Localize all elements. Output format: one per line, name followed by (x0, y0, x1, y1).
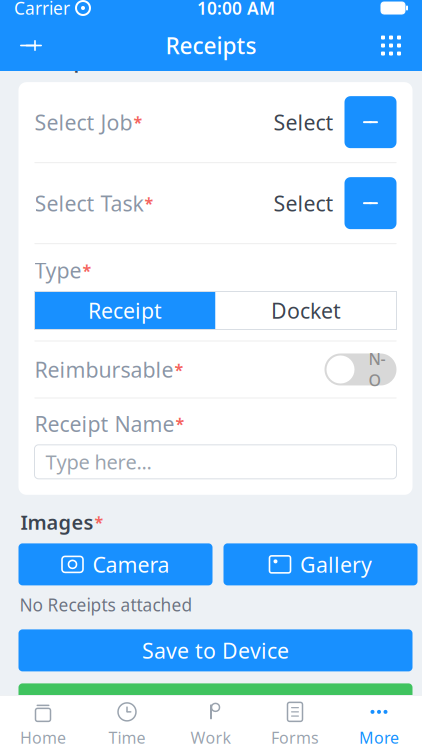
button[interactable] (18, 683, 412, 725)
staticText: Receipt (88, 296, 162, 325)
staticText: NO (368, 348, 385, 391)
staticText: Select (273, 189, 333, 217)
staticText: Carrier (14, 0, 70, 19)
staticText: More (359, 727, 399, 748)
staticText: Forms (271, 727, 319, 748)
staticText: * (82, 260, 91, 281)
staticText: * (144, 192, 153, 214)
button[interactable]: Type here... (34, 445, 396, 479)
button[interactable]: Forms (253, 695, 337, 750)
button[interactable]: Back (6, 20, 56, 70)
staticText: Select Job (34, 108, 132, 136)
staticText: Work (190, 727, 231, 748)
staticText: No Receipts attached (19, 593, 192, 616)
button[interactable]: Docket (215, 291, 396, 329)
staticText: Receipt Name (34, 409, 174, 438)
staticText: Time (108, 727, 145, 748)
staticText: Images (20, 509, 93, 535)
button[interactable]: More (337, 695, 421, 750)
staticText: Receipt Info (20, 47, 138, 73)
staticText: Camera (92, 550, 169, 578)
staticText: Receipts (165, 30, 256, 60)
button[interactable]: Save to Device (18, 629, 412, 671)
button[interactable]: Select Job (344, 96, 396, 148)
staticText: Select (273, 108, 333, 136)
staticText: Type here... (45, 448, 151, 475)
button[interactable]: Select Task (344, 177, 396, 229)
staticText: Gallery (300, 550, 372, 578)
staticText: * (175, 413, 184, 434)
button[interactable]: Reimbursable toggle (324, 353, 396, 385)
staticText: * (174, 359, 183, 380)
staticText: 10:00 AM (197, 0, 275, 19)
button[interactable]: Time (85, 695, 169, 750)
button[interactable]: Receipt (34, 291, 215, 329)
button[interactable]: Apps (366, 20, 416, 70)
staticText: Type (34, 256, 81, 284)
staticText: Docket (271, 296, 341, 325)
staticText: Reimbursable (34, 355, 173, 384)
staticText: Select Task (34, 189, 143, 217)
button[interactable]: Home (1, 695, 85, 750)
staticText: Home (20, 727, 66, 748)
button[interactable]: Gallery (223, 543, 417, 585)
button[interactable]: Camera (18, 543, 212, 585)
staticText: * (133, 111, 142, 133)
staticText: Save to Device (142, 636, 289, 664)
button[interactable]: Work (169, 695, 253, 750)
staticText: * (94, 511, 103, 533)
